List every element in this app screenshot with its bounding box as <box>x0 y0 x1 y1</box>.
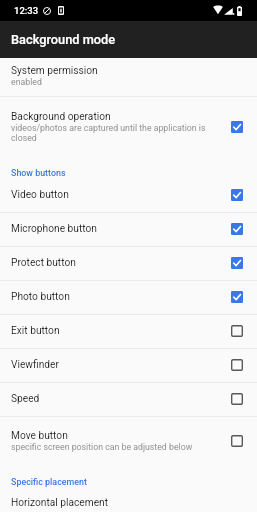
staticText: Show buttons <box>11 168 66 178</box>
button[interactable]: Move button <box>224 429 250 455</box>
staticText: Exit button <box>11 325 60 337</box>
staticText: Background operation <box>11 111 111 123</box>
button[interactable]: Microphone button <box>0 213 257 246</box>
button[interactable]: Move button <box>0 417 257 466</box>
staticText: specific screen position can be adjusted… <box>11 442 193 452</box>
staticText: System permission <box>11 65 98 77</box>
staticText: enabled <box>11 77 42 87</box>
button[interactable]: System permission <box>0 58 257 96</box>
staticText: 12:33 <box>14 5 39 16</box>
button[interactable]: Speed <box>0 383 257 416</box>
button[interactable]: Background operation <box>224 115 250 141</box>
button[interactable]: Video button <box>224 183 250 209</box>
staticText: Protect button <box>11 257 76 269</box>
button[interactable]: Speed <box>224 387 250 413</box>
staticText: Photo button <box>11 291 70 303</box>
button[interactable]: Protect button <box>224 251 250 277</box>
staticText: Background mode <box>11 32 116 47</box>
button[interactable]: Horizontal placement <box>0 495 257 512</box>
button[interactable]: Exit button <box>224 319 250 345</box>
staticText: Viewfinder <box>11 359 59 371</box>
button[interactable]: Background operation <box>0 97 257 159</box>
button[interactable]: Microphone button <box>224 217 250 243</box>
staticText: Microphone button <box>11 223 97 235</box>
button[interactable]: Photo button <box>224 285 250 311</box>
button[interactable]: Viewfinder <box>224 353 250 379</box>
button[interactable]: Exit button <box>0 315 257 348</box>
staticText: Video button <box>11 189 69 201</box>
staticText: Specific placement <box>11 477 87 487</box>
staticText: videos/photos are captured until the app… <box>11 123 220 144</box>
staticText: Speed <box>11 393 40 405</box>
staticText: Horizontal placement <box>11 497 109 509</box>
staticText: Move button <box>11 430 68 442</box>
button[interactable]: Viewfinder <box>0 349 257 382</box>
button[interactable]: Video button <box>0 179 257 212</box>
button[interactable]: Photo button <box>0 281 257 314</box>
button[interactable]: Protect button <box>0 247 257 280</box>
